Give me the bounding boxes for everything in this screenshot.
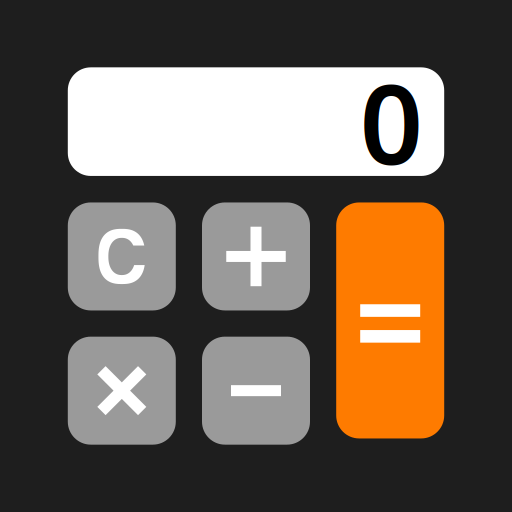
button[interactable]: Clear — [68, 202, 176, 310]
staticText: 0 — [360, 48, 423, 195]
button[interactable]: Equals — [336, 202, 444, 438]
button[interactable]: Subtract — [202, 337, 310, 445]
button[interactable]: Add — [202, 202, 310, 310]
button[interactable]: Multiply — [68, 337, 176, 445]
